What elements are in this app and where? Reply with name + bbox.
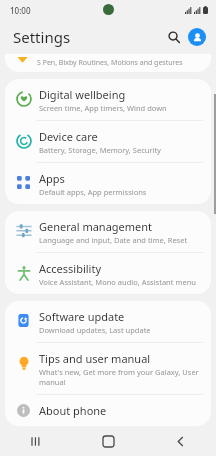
button[interactable]: Home bbox=[93, 426, 123, 456]
button[interactable]: Search bbox=[163, 26, 185, 48]
staticText: Screen time, App timers, Wind down bbox=[39, 103, 167, 113]
button[interactable]: Software update bbox=[5, 301, 211, 342]
button[interactable]: Digital wellbeing bbox=[5, 79, 211, 120]
button[interactable]: General management bbox=[5, 211, 211, 252]
staticText: Settings bbox=[13, 27, 71, 47]
staticText: Voice Assistant, Mono audio, Assistant m… bbox=[39, 277, 196, 287]
staticText: Default apps, App permissions bbox=[39, 187, 147, 197]
staticText: Software update bbox=[39, 309, 125, 324]
button[interactable]: Apps bbox=[5, 163, 211, 204]
button[interactable]: S Pen, Bixby Routines, Motions and gestu… bbox=[5, 54, 211, 72]
staticText: What's new, Get more from your Galaxy, U… bbox=[39, 367, 203, 387]
staticText: Digital wellbeing bbox=[39, 87, 126, 102]
staticText: 10:00 bbox=[10, 5, 31, 16]
staticText: S Pen, Bixby Routines, Motions and gestu… bbox=[37, 58, 183, 68]
button[interactable]: Tips and user manual bbox=[5, 343, 211, 394]
button[interactable]: About phone bbox=[5, 395, 211, 426]
staticText: General management bbox=[39, 219, 153, 234]
button[interactable]: Device care bbox=[5, 121, 211, 162]
staticText: Device care bbox=[39, 129, 98, 144]
staticText: About phone bbox=[39, 403, 107, 418]
staticText: Download updates, Last update bbox=[39, 325, 151, 335]
staticText: Tips and user manual bbox=[39, 351, 151, 366]
staticText: Apps bbox=[39, 171, 65, 186]
button[interactable]: Back bbox=[165, 426, 195, 456]
staticText: Language and input, Date and time, Reset bbox=[39, 235, 188, 245]
button[interactable]: Account bbox=[188, 28, 206, 46]
staticText: Accessibility bbox=[39, 261, 102, 276]
button[interactable]: Recents bbox=[21, 426, 51, 456]
button[interactable]: Accessibility bbox=[5, 253, 211, 294]
staticText: Battery, Storage, Memory, Security bbox=[39, 145, 161, 155]
